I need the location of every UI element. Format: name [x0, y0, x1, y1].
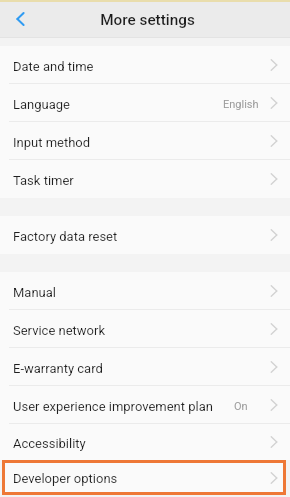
button[interactable]: Accessibility	[0, 424, 290, 460]
button[interactable]: Service network	[0, 310, 290, 348]
staticText: Date and time	[13, 59, 94, 74]
staticText: E-warranty card	[13, 361, 103, 376]
button[interactable]: Manual	[0, 272, 290, 310]
button[interactable]: Factory data reset	[0, 216, 290, 254]
staticText: Developer options	[13, 471, 118, 486]
button[interactable]: Input method	[0, 122, 290, 160]
staticText: Factory data reset	[13, 229, 118, 244]
button[interactable]: E-warranty card	[0, 348, 290, 386]
staticText: More settings	[100, 11, 195, 29]
staticText: Service network	[13, 323, 106, 338]
button[interactable]: Date and time	[0, 46, 290, 84]
staticText: Manual	[13, 285, 56, 300]
button[interactable]: User experience improvement plan	[0, 386, 290, 424]
button[interactable]: Language	[0, 84, 290, 122]
staticText: User experience improvement plan	[13, 399, 213, 414]
staticText: Language	[13, 97, 70, 112]
button[interactable]: Back	[0, 2, 40, 37]
staticText: Task timer	[13, 173, 74, 188]
button[interactable]: Developer options	[2, 460, 286, 495]
staticText: Accessibility	[13, 436, 86, 451]
staticText: English	[223, 98, 259, 111]
staticText: On	[234, 400, 248, 413]
staticText: Input method	[13, 135, 91, 150]
button[interactable]: Task timer	[0, 160, 290, 198]
